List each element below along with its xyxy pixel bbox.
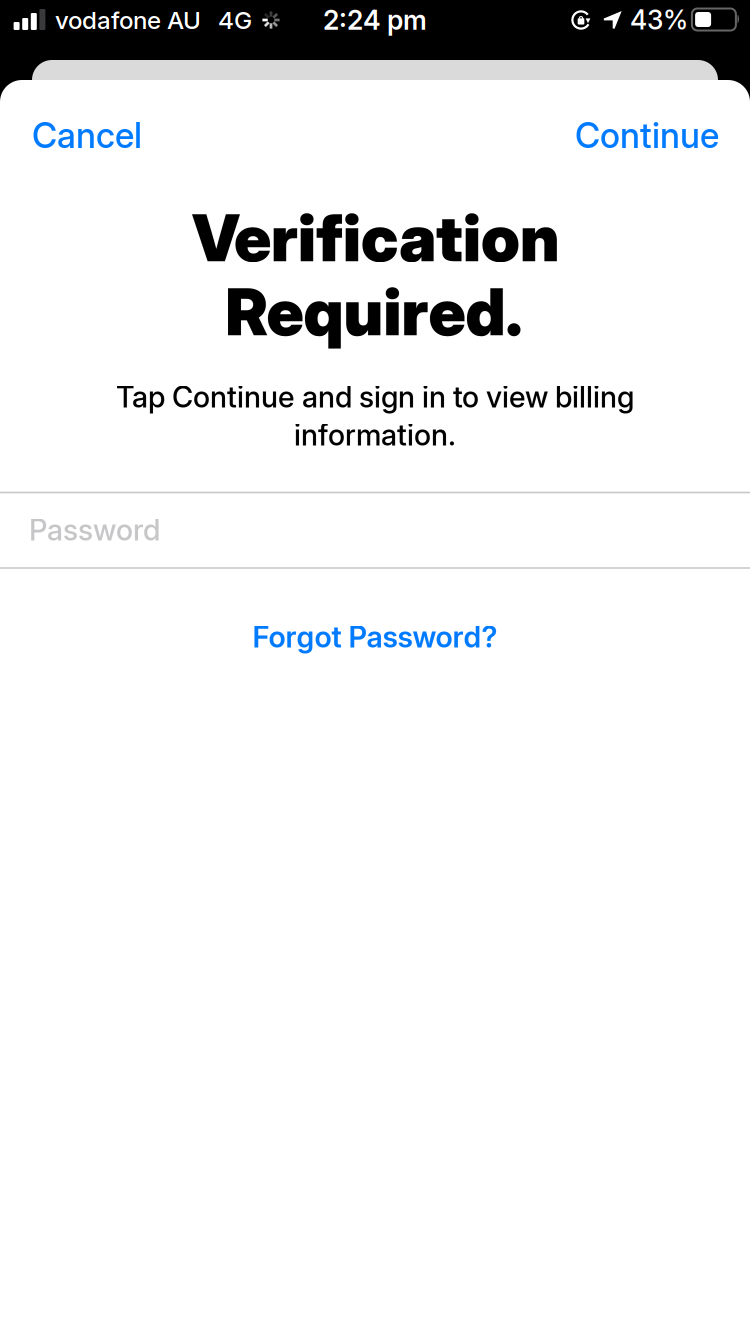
- staticText: Cancel: [32, 115, 142, 156]
- staticText: Continue: [575, 115, 719, 156]
- button[interactable]: Continue: [549, 103, 719, 167]
- button[interactable]: Cancel: [32, 103, 182, 167]
- staticText: Required.: [225, 274, 522, 350]
- staticText: information.: [294, 418, 456, 452]
- staticText: 4G: [218, 6, 252, 34]
- staticText: Tap Continue and sign in to view billing: [116, 380, 634, 414]
- button[interactable]: Password: [0, 493, 750, 567]
- button[interactable]: Forgot Password?: [225, 609, 525, 665]
- staticText: 43%: [630, 4, 688, 35]
- staticText: Verification: [192, 200, 560, 276]
- staticText: vodafone AU: [55, 6, 201, 34]
- staticText: 2:24 pm: [323, 4, 427, 36]
- staticText: Password: [29, 513, 160, 547]
- staticText: Forgot Password?: [252, 620, 497, 654]
